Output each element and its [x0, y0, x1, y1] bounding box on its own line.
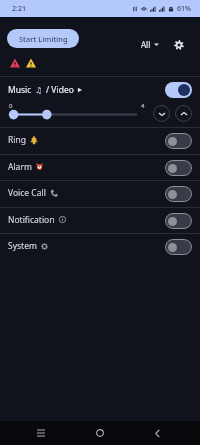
staticText: Alarm — [8, 161, 32, 173]
button[interactable]: Collapse — [153, 105, 170, 122]
button[interactable]: Home — [80, 421, 120, 445]
button[interactable]: Voice Call — [0, 181, 200, 207]
button[interactable]: Disabled — [165, 239, 192, 255]
staticText: ♫ — [35, 86, 43, 95]
staticText: Voice Call — [8, 187, 46, 199]
button[interactable]: Start Limiting — [7, 29, 79, 48]
button[interactable]: All — [137, 35, 163, 54]
button[interactable]: Expand — [175, 105, 192, 122]
staticText: 0 — [9, 102, 13, 110]
button[interactable]: Disabled — [165, 133, 192, 149]
staticText: 61% — [177, 4, 191, 14]
staticText: Notification — [8, 214, 55, 226]
button[interactable]: Notification — [0, 208, 200, 233]
button[interactable]: Settings — [167, 33, 191, 57]
staticText: All — [141, 39, 151, 50]
button[interactable]: Back — [137, 421, 177, 445]
staticText: Ring — [8, 134, 26, 146]
button[interactable]: Disabled — [165, 160, 192, 176]
staticText: 2:21 — [12, 4, 26, 14]
staticText: System — [8, 240, 37, 252]
staticText: Music — [8, 84, 32, 96]
staticText: 4 — [141, 102, 145, 110]
button[interactable]: Recents — [21, 421, 61, 445]
staticText: Start Limiting — [19, 34, 68, 44]
button[interactable]: Music and video enabled — [165, 82, 192, 98]
staticText: / Video — [46, 84, 74, 96]
button[interactable]: Disabled — [165, 213, 192, 229]
button[interactable]: System — [0, 234, 200, 260]
button[interactable]: Disabled — [165, 186, 192, 202]
button[interactable]: Ring — [0, 128, 200, 154]
button[interactable]: Alarm — [0, 155, 200, 180]
